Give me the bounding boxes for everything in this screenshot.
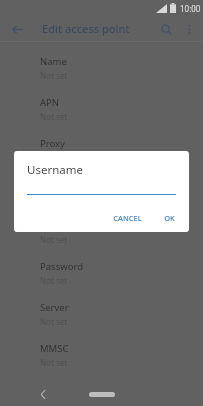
staticText: OK: [164, 213, 175, 223]
staticText: Not set: [40, 234, 68, 245]
staticText: Not set: [40, 316, 68, 327]
button[interactable]: More options: [180, 20, 198, 38]
button[interactable]: Back: [9, 21, 25, 37]
staticText: APN: [40, 96, 60, 109]
staticText: Name: [40, 55, 67, 68]
staticText: Not set: [40, 275, 68, 286]
button[interactable]: Home: [89, 392, 115, 397]
staticText: MMSC: [40, 342, 69, 355]
button[interactable]: Username: [0, 215, 203, 256]
button[interactable]: Proxy: [0, 133, 203, 174]
button[interactable]: OK: [159, 209, 180, 227]
button[interactable]: MMSC: [0, 338, 203, 379]
staticText: Not set: [40, 193, 68, 204]
staticText: CANCEL: [113, 213, 142, 223]
staticText: Not set: [40, 111, 68, 122]
button[interactable]: Password: [0, 256, 203, 297]
button[interactable]: Name: [0, 51, 203, 92]
button[interactable]: CANCEL: [108, 209, 147, 227]
staticText: Not set: [40, 357, 68, 368]
button[interactable]: Port: [0, 174, 203, 215]
staticText: Proxy: [40, 137, 65, 150]
staticText: Edit access point: [42, 21, 130, 36]
button[interactable]: Search: [157, 20, 175, 38]
staticText: 10:00: [180, 3, 201, 14]
staticText: Server: [40, 301, 69, 314]
button[interactable]: Back: [35, 386, 51, 402]
staticText: Not set: [40, 70, 68, 81]
staticText: Username: [27, 162, 83, 178]
staticText: Password: [40, 260, 83, 273]
